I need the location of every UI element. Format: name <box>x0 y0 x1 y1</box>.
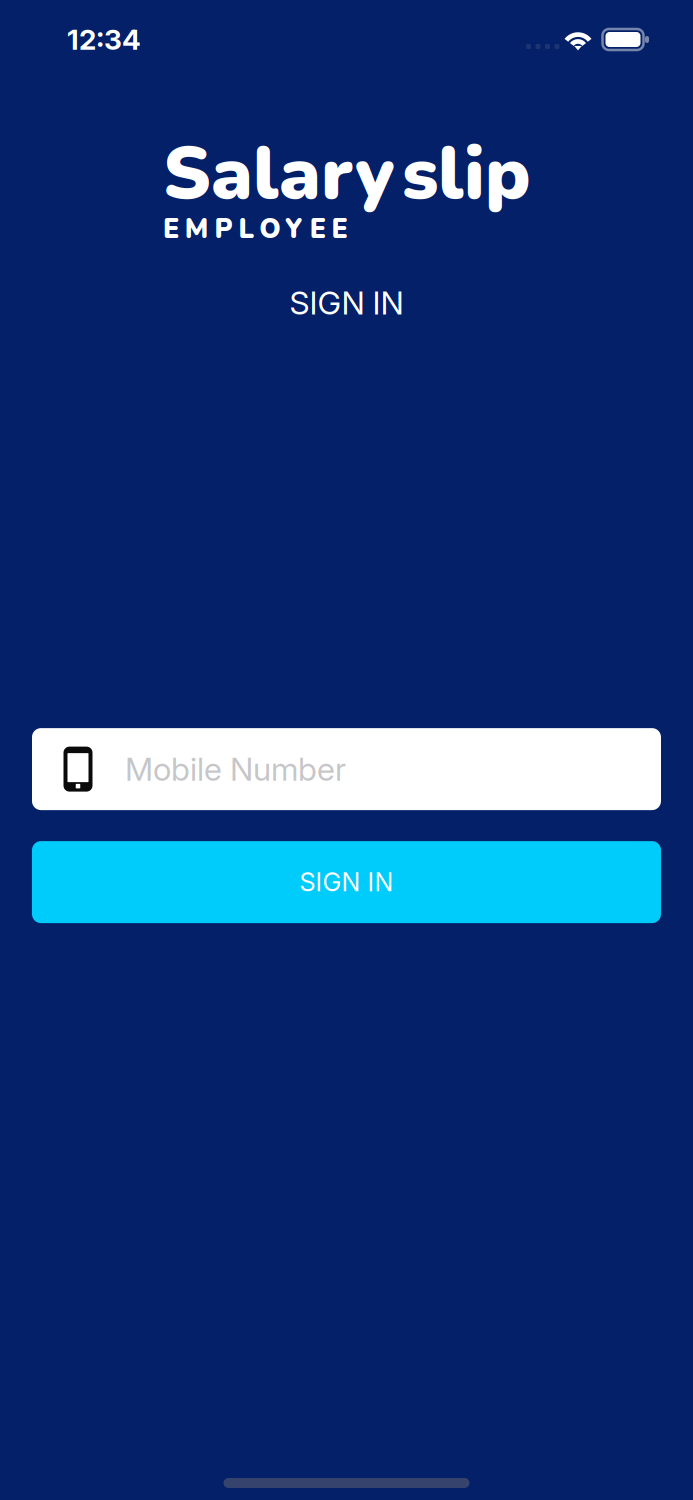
staticText: Mobile Number <box>125 750 346 788</box>
button[interactable]: Mobile Number <box>32 728 661 810</box>
staticText: SIGN IN <box>299 867 393 897</box>
staticText: Salary slip <box>163 124 530 224</box>
button[interactable]: SIGN IN <box>32 841 661 923</box>
staticText: SIGN IN <box>289 283 403 322</box>
staticText: EMPLOYEE <box>163 211 348 247</box>
staticText: 12:34 <box>67 23 141 56</box>
